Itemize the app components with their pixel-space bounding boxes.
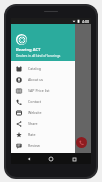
button[interactable]: Call bbox=[76, 137, 87, 148]
button[interactable]: Rate bbox=[11, 129, 75, 140]
staticText: Dealers in all kind of bearings bbox=[16, 54, 61, 58]
staticText: Website bbox=[28, 110, 42, 115]
button[interactable]: About us bbox=[11, 74, 75, 85]
staticText: 4:00 bbox=[82, 19, 89, 24]
staticText: Share bbox=[28, 121, 38, 126]
button[interactable]: Contact bbox=[11, 96, 75, 107]
staticText: About us bbox=[28, 77, 44, 82]
staticText: Rate bbox=[28, 132, 36, 137]
button[interactable]: Share bbox=[11, 118, 75, 129]
staticText: Bearing ACT bbox=[16, 47, 41, 53]
button[interactable]: Home bbox=[46, 154, 56, 164]
staticText: Catalog bbox=[28, 66, 41, 71]
button[interactable]: Catalog bbox=[11, 63, 75, 74]
button[interactable]: SAP Price list bbox=[11, 85, 75, 96]
button[interactable]: Website bbox=[11, 107, 75, 118]
staticText: SAP Price list bbox=[28, 88, 50, 93]
button[interactable]: Review bbox=[11, 140, 75, 151]
button[interactable]: Recents bbox=[69, 154, 79, 164]
staticText: Contact bbox=[28, 99, 42, 104]
button[interactable]: Back bbox=[24, 154, 34, 164]
staticText: Review bbox=[28, 143, 40, 148]
